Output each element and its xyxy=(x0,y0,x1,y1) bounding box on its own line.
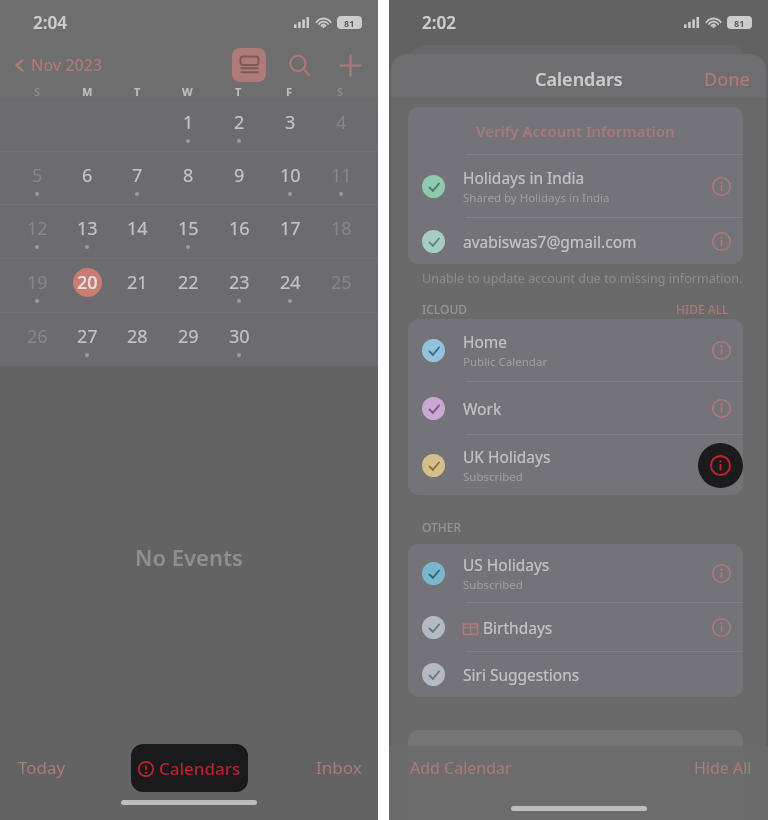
button[interactable]: US Holidays xyxy=(408,544,743,602)
staticText: 16 xyxy=(229,216,250,241)
button[interactable]: More info xyxy=(704,333,738,367)
staticText: Nov 2023 xyxy=(31,54,103,76)
staticText: 6 xyxy=(82,163,93,188)
staticText: 25 xyxy=(331,270,352,295)
button[interactable]: Home xyxy=(408,319,743,381)
staticText: Hide All xyxy=(694,757,752,779)
button[interactable]: More info xyxy=(704,556,738,590)
button[interactable]: More info xyxy=(704,610,738,644)
staticText: 12 xyxy=(27,216,48,241)
staticText: 22 xyxy=(178,270,199,295)
staticText: 20 xyxy=(77,270,98,295)
button[interactable]: Search xyxy=(283,49,315,81)
staticText: 9 xyxy=(234,163,245,188)
staticText: T xyxy=(134,84,141,98)
staticText: avabiswas7@gmail.com xyxy=(463,231,637,252)
button[interactable]: Nov 2023 xyxy=(12,54,103,76)
staticText: Holidays in India xyxy=(463,167,585,188)
staticText: Work xyxy=(463,398,502,419)
staticText: Public Calendar xyxy=(463,354,548,370)
staticText: Subscribed xyxy=(463,577,523,593)
staticText: 3 xyxy=(285,110,296,135)
button[interactable]: avabiswas7@gmail.com xyxy=(408,218,743,264)
staticText: Calendars xyxy=(159,757,241,780)
staticText: No Events xyxy=(135,542,243,572)
staticText: 19 xyxy=(27,270,48,295)
button[interactable]: Add event xyxy=(334,49,366,81)
staticText: S xyxy=(34,84,41,98)
button[interactable]: Add Calendar xyxy=(402,749,520,787)
staticText: 8 xyxy=(183,163,194,188)
staticText: T xyxy=(235,84,242,98)
staticText: 1 xyxy=(183,110,194,135)
staticText: 2:02 xyxy=(422,11,456,34)
button[interactable]: UK Holidays xyxy=(408,435,743,495)
staticText: Siri Suggestions xyxy=(463,664,580,685)
staticText: Verify Account Information xyxy=(476,121,675,141)
button[interactable]: Siri Suggestions xyxy=(408,652,743,697)
staticText: 81 xyxy=(734,17,745,29)
button[interactable]: List view xyxy=(232,48,266,82)
staticText: US Holidays xyxy=(463,554,550,575)
staticText: 2:04 xyxy=(33,11,67,34)
staticText: 29 xyxy=(178,324,199,349)
staticText: Inbox xyxy=(316,756,362,779)
staticText: Done xyxy=(704,67,750,92)
button[interactable]: Done xyxy=(688,59,766,100)
staticText: 4 xyxy=(336,110,347,135)
staticText: OTHER xyxy=(422,519,462,535)
staticText: ICLOUD xyxy=(422,301,468,317)
button[interactable]: Work xyxy=(408,382,743,434)
staticText: 26 xyxy=(27,324,48,349)
staticText: 5 xyxy=(32,163,43,188)
button[interactable]: Today xyxy=(10,748,74,787)
staticText: 7 xyxy=(132,163,143,188)
staticText: Shared by Holidays in India xyxy=(463,190,610,206)
staticText: 17 xyxy=(280,216,301,241)
staticText: 13 xyxy=(77,216,98,241)
button[interactable]: Holidays in India xyxy=(408,155,743,217)
staticText: 30 xyxy=(229,324,250,349)
staticText: Birthdays xyxy=(483,617,553,638)
button[interactable]: More info xyxy=(704,224,738,258)
staticText: F xyxy=(286,84,293,98)
staticText: UK Holidays xyxy=(463,446,551,467)
staticText: 10 xyxy=(280,163,301,188)
staticText: 23 xyxy=(229,270,250,295)
button[interactable]: Calendars xyxy=(131,744,248,792)
staticText: 2 xyxy=(234,110,245,135)
staticText: Calendars xyxy=(535,67,623,92)
staticText: Add Calendar xyxy=(410,757,512,779)
button[interactable]: More info xyxy=(704,391,738,425)
button[interactable]: HIDE ALL xyxy=(676,301,729,317)
staticText: HIDE ALL xyxy=(676,301,729,317)
staticText: M xyxy=(82,84,93,98)
staticText: 11 xyxy=(331,163,352,188)
staticText: W xyxy=(182,84,193,98)
staticText: 27 xyxy=(77,324,98,349)
button[interactable]: More info xyxy=(704,169,738,203)
staticText: Unable to update account due to missing … xyxy=(422,270,743,287)
staticText: 14 xyxy=(127,216,148,241)
staticText: 28 xyxy=(127,324,148,349)
staticText: 24 xyxy=(280,270,301,295)
staticText: Today xyxy=(18,756,66,779)
staticText: S xyxy=(337,84,344,98)
staticText: Subscribed xyxy=(463,469,523,485)
button[interactable]: Hide All xyxy=(686,749,760,787)
staticText: Home xyxy=(463,331,508,352)
button[interactable]: Birthdays xyxy=(408,603,743,651)
staticText: 81 xyxy=(344,17,355,29)
button[interactable]: More info xyxy=(698,443,743,488)
staticText: 18 xyxy=(331,216,352,241)
staticText: 15 xyxy=(178,216,199,241)
staticText: 21 xyxy=(127,270,148,295)
button[interactable]: Inbox xyxy=(308,748,370,787)
